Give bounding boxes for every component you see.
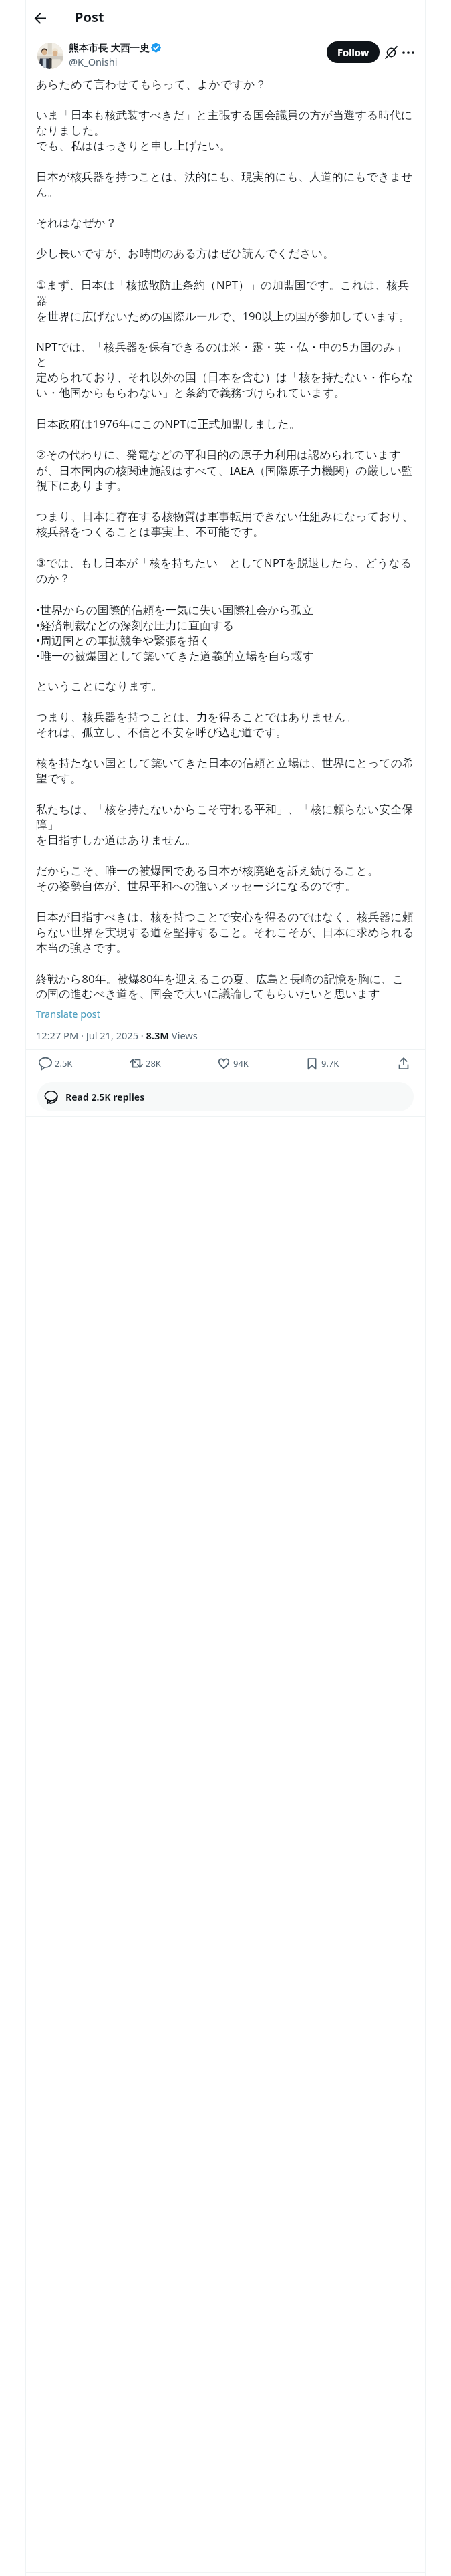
staticText: 熊本市長 大西一史	[69, 41, 150, 54]
staticText: Translate post	[36, 1007, 101, 1021]
staticText: 28K	[146, 1057, 161, 1069]
staticText: 2.5K	[55, 1057, 73, 1069]
button[interactable]: More	[398, 43, 418, 62]
button[interactable]: Read 2.5K replies	[37, 1082, 414, 1111]
staticText: Post	[75, 8, 104, 26]
button[interactable]: Repost	[130, 1057, 161, 1070]
staticText: 9.7K	[321, 1057, 339, 1069]
button[interactable]: Like	[217, 1057, 249, 1070]
staticText: Read 2.5K replies	[65, 1091, 145, 1103]
button[interactable]: Follow	[327, 41, 380, 63]
staticText: あらためて言わせてもらって、よかですか？ いま「日本も核武装すべきだ」と主張する…	[36, 77, 415, 1002]
button[interactable]: Profile photo	[37, 43, 63, 69]
staticText: 12:27 PM · Jul 21, 2025 · 8.3M Views	[36, 1029, 198, 1042]
button[interactable]: Bookmark	[305, 1057, 339, 1070]
button[interactable]: Not interested	[382, 43, 401, 62]
button[interactable]: Share	[396, 1055, 412, 1071]
button[interactable]: Reply	[39, 1057, 73, 1070]
staticText: @K_Onishi	[69, 55, 118, 68]
staticText: Follow	[337, 45, 369, 59]
button[interactable]: Back	[28, 6, 52, 30]
staticText: 94K	[233, 1057, 249, 1069]
